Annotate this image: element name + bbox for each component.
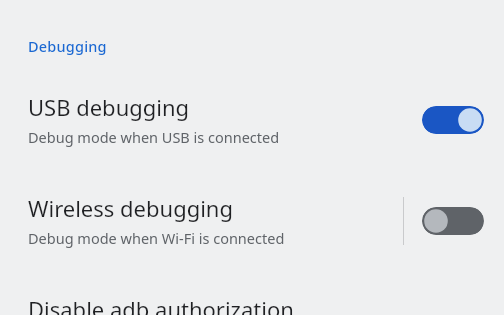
button[interactable]: Wireless debugging toggle xyxy=(422,207,484,235)
button[interactable]: Disable adb authorization xyxy=(0,294,504,315)
button[interactable]: USB debugging toggle xyxy=(422,106,484,134)
staticText: Wireless debugging xyxy=(28,193,233,223)
staticText: Debug mode when Wi-Fi is connected xyxy=(28,228,285,248)
staticText: USB debugging xyxy=(28,92,190,122)
staticText: Disable adb authorization xyxy=(28,294,294,315)
button[interactable]: Wireless debugging xyxy=(0,193,504,248)
staticText: Debug mode when USB is connected xyxy=(28,127,280,147)
staticText: Debugging xyxy=(28,36,107,56)
button[interactable]: USB debugging xyxy=(0,92,504,147)
